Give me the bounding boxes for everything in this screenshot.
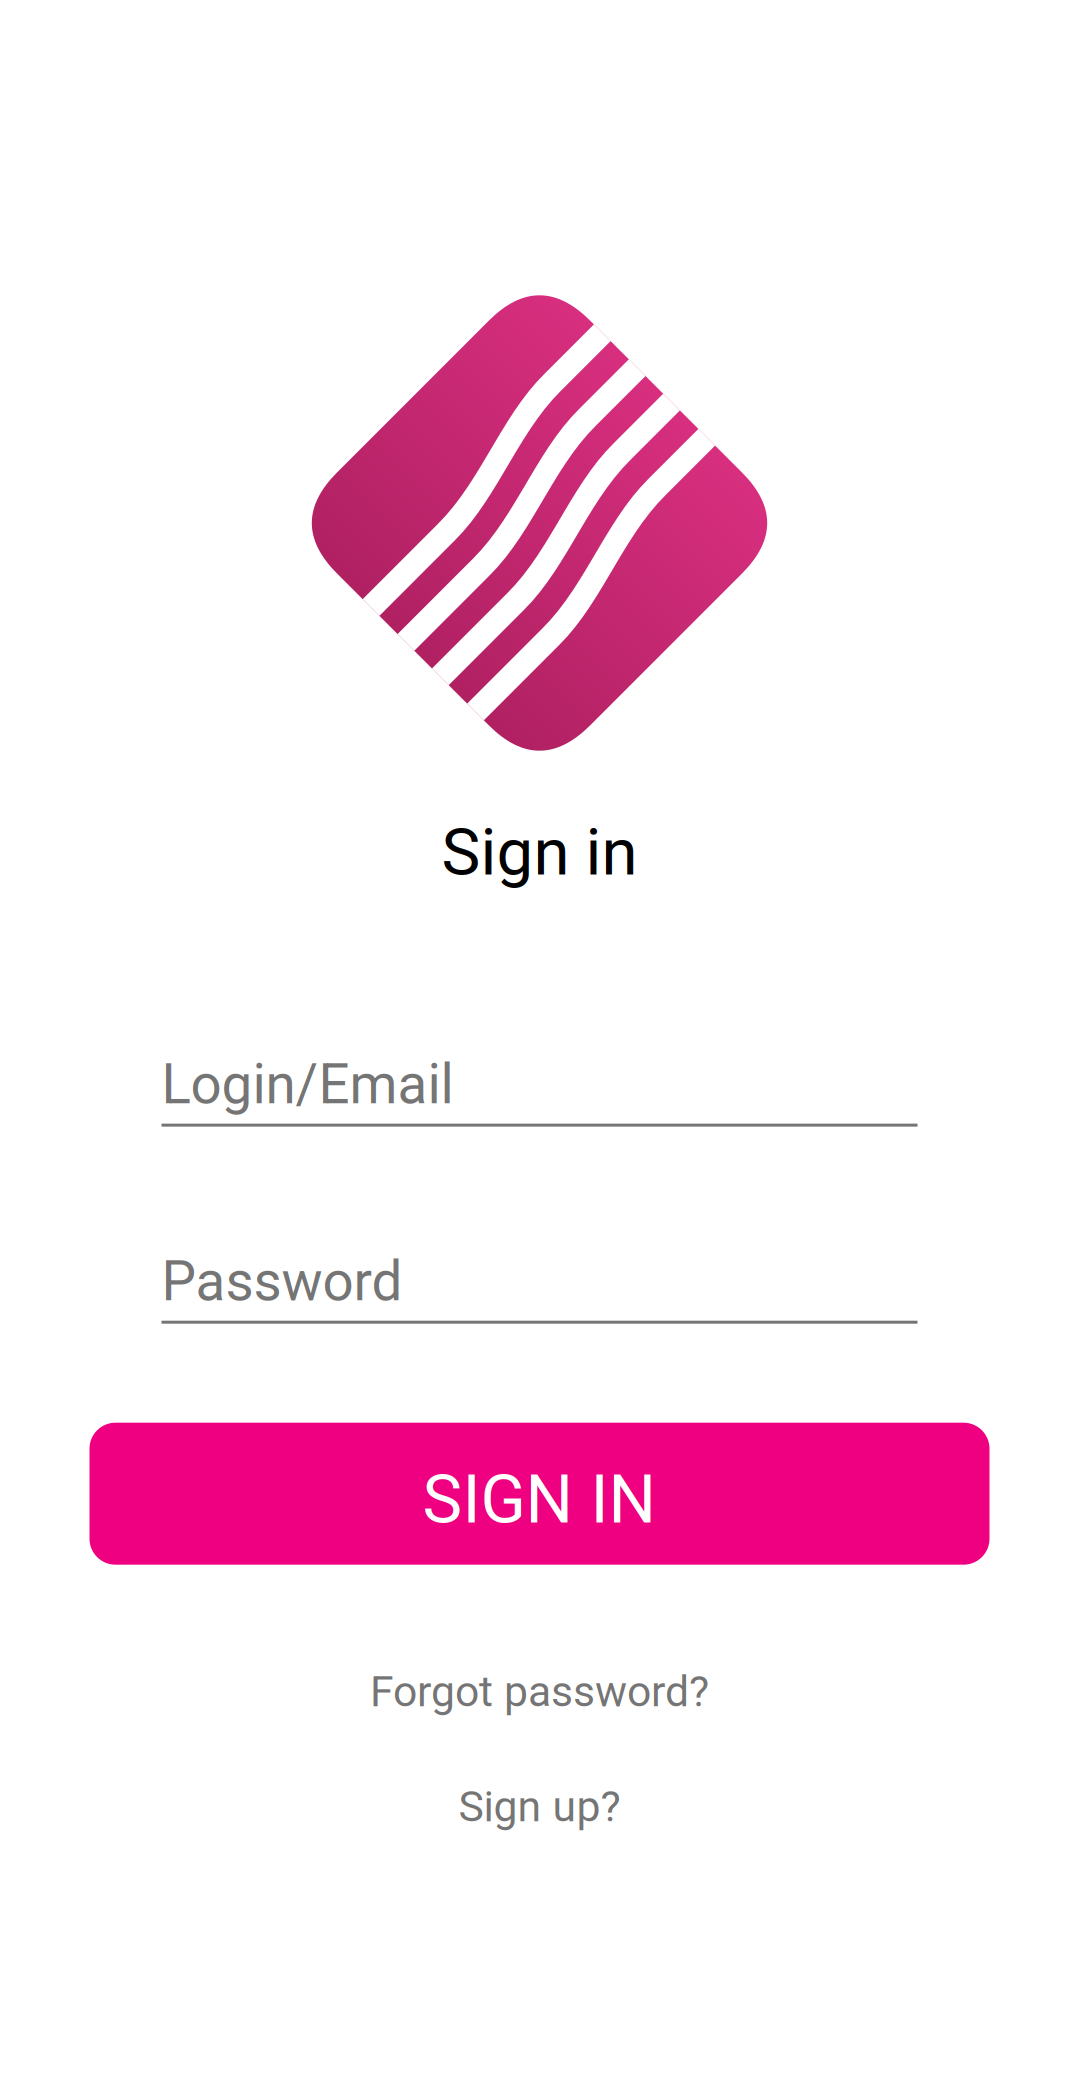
button[interactable]: Sign up? bbox=[458, 1782, 620, 1832]
staticText: Forgot password? bbox=[370, 1667, 709, 1717]
staticText: Sign in bbox=[441, 814, 637, 891]
staticText: Login/Email bbox=[161, 1053, 453, 1117]
button[interactable]: Login/Email bbox=[161, 1053, 917, 1127]
button[interactable]: Forgot password? bbox=[370, 1667, 709, 1717]
staticText: SIGN IN bbox=[422, 1461, 656, 1539]
button[interactable]: SIGN IN bbox=[89, 1423, 989, 1565]
button[interactable]: Password bbox=[161, 1250, 917, 1324]
staticText: Sign up? bbox=[458, 1782, 620, 1832]
staticText: Password bbox=[161, 1250, 402, 1314]
